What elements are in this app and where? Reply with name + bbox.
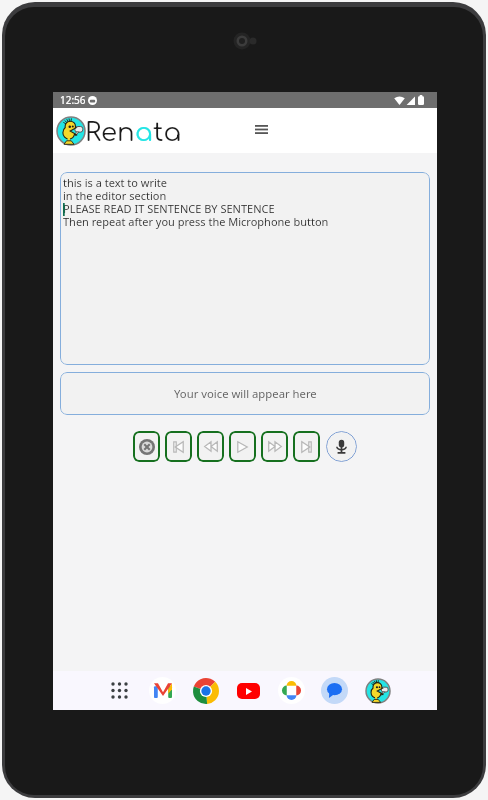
button[interactable]: Menu bbox=[243, 111, 279, 147]
button[interactable]: Microphone bbox=[326, 431, 357, 462]
button[interactable]: YouTube bbox=[235, 677, 262, 704]
button[interactable]: Play bbox=[229, 431, 256, 462]
button[interactable]: Chrome bbox=[192, 677, 219, 704]
staticText: ta bbox=[153, 118, 182, 147]
button[interactable]: Your voice will appear here bbox=[60, 372, 430, 415]
button[interactable]: Renata bbox=[364, 677, 391, 704]
staticText: Your voice will appear here bbox=[174, 386, 317, 401]
staticText: a bbox=[135, 118, 153, 147]
button[interactable]: Photos bbox=[278, 677, 305, 704]
button[interactable]: Rewind bbox=[197, 431, 224, 462]
staticText: 12:56 bbox=[60, 93, 86, 107]
button[interactable]: this is a text to write in the editor se… bbox=[60, 172, 430, 365]
button[interactable]: Stop bbox=[133, 431, 160, 462]
button[interactable]: All apps bbox=[106, 677, 133, 704]
staticText: Ren bbox=[85, 118, 135, 147]
button[interactable]: Fast forward bbox=[261, 431, 288, 462]
button[interactable]: Next bbox=[293, 431, 320, 462]
button[interactable]: Messages bbox=[321, 677, 348, 704]
button[interactable]: Previous bbox=[165, 431, 192, 462]
staticText: this is a text to write in the editor se… bbox=[63, 175, 329, 229]
button[interactable]: Gmail bbox=[149, 677, 176, 704]
